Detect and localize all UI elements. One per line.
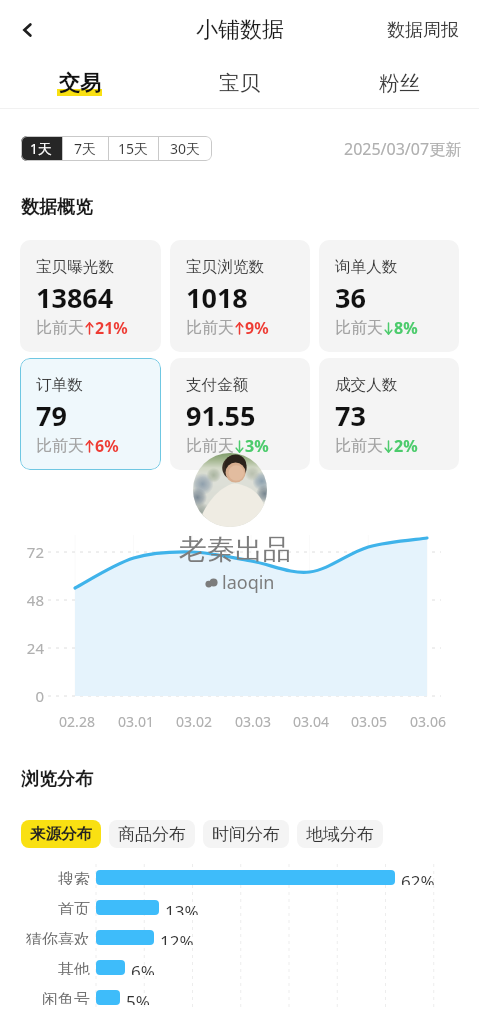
staticText: 36 bbox=[335, 279, 366, 316]
staticText: 03.01 bbox=[108, 712, 164, 731]
staticText: 时间分布 bbox=[212, 824, 280, 845]
staticText: 5% bbox=[126, 990, 150, 1005]
staticText: 48 bbox=[14, 590, 44, 610]
button[interactable]: 30天 bbox=[159, 136, 212, 161]
button[interactable]: 猜你喜欢 bbox=[0, 930, 479, 945]
button[interactable]: 15天 bbox=[109, 136, 158, 161]
staticText: 91.55 bbox=[186, 397, 256, 434]
button[interactable]: 订单数 bbox=[20, 358, 161, 470]
staticText: 粉丝 bbox=[379, 70, 420, 96]
staticText: 浏览分布 bbox=[21, 768, 93, 791]
staticText: laoqin bbox=[222, 570, 275, 595]
staticText: 比前天 bbox=[335, 436, 383, 456]
button[interactable]: 闲鱼号 bbox=[0, 990, 479, 1005]
staticText: 来源分布 bbox=[30, 824, 92, 844]
staticText: 13864 bbox=[36, 279, 114, 316]
button[interactable]: 粉丝 bbox=[319, 60, 479, 108]
staticText: 猜你喜欢 bbox=[0, 930, 90, 945]
staticText: 比前天 bbox=[186, 318, 234, 338]
staticText: 15天 bbox=[118, 139, 149, 158]
button[interactable]: 宝贝曝光数 bbox=[20, 240, 161, 352]
button[interactable]: 支付金额 bbox=[170, 358, 310, 470]
button[interactable]: 返回 bbox=[4, 7, 50, 53]
staticText: 2% bbox=[394, 435, 418, 457]
staticText: 老秦出品 bbox=[179, 532, 291, 567]
staticText: 比前天 bbox=[186, 436, 234, 456]
button[interactable]: 搜索 bbox=[0, 870, 479, 885]
staticText: 30天 bbox=[170, 139, 201, 158]
staticText: 1018 bbox=[186, 279, 248, 316]
staticText: 8% bbox=[394, 317, 418, 339]
staticText: 询单人数 bbox=[335, 257, 398, 277]
staticText: 首页 bbox=[0, 900, 90, 915]
staticText: 24 bbox=[14, 638, 44, 658]
staticText: 宝贝浏览数 bbox=[186, 257, 264, 277]
staticText: 3% bbox=[245, 435, 269, 457]
staticText: 1天 bbox=[30, 139, 53, 158]
button[interactable]: 1天 bbox=[21, 136, 62, 161]
staticText: 比前天 bbox=[36, 318, 84, 338]
staticText: 03.04 bbox=[283, 712, 339, 731]
staticText: 02.28 bbox=[49, 712, 105, 731]
staticText: 支付金额 bbox=[186, 375, 249, 395]
staticText: 79 bbox=[36, 397, 67, 434]
staticText: 成交人数 bbox=[335, 375, 398, 395]
button[interactable]: 询单人数 bbox=[319, 240, 459, 352]
staticText: 搜索 bbox=[0, 870, 90, 885]
staticText: 12% bbox=[160, 930, 194, 945]
staticText: 03.06 bbox=[400, 712, 456, 731]
staticText: 6% bbox=[95, 435, 119, 457]
staticText: 03.02 bbox=[166, 712, 222, 731]
staticText: 0 bbox=[14, 686, 44, 706]
staticText: 73 bbox=[335, 397, 366, 434]
button[interactable]: 地域分布 bbox=[297, 820, 383, 848]
staticText: 21% bbox=[95, 317, 128, 339]
staticText: 比前天 bbox=[335, 318, 383, 338]
staticText: 7天 bbox=[74, 139, 97, 158]
button[interactable]: 首页 bbox=[0, 900, 479, 915]
staticText: 03.03 bbox=[225, 712, 281, 731]
button[interactable]: 宝贝 bbox=[159, 60, 319, 108]
staticText: 交易 bbox=[59, 70, 101, 96]
button[interactable]: 商品分布 bbox=[109, 820, 195, 848]
staticText: 比前天 bbox=[36, 436, 84, 456]
staticText: 小铺数据 bbox=[196, 16, 284, 44]
button[interactable]: 成交人数 bbox=[319, 358, 459, 470]
staticText: 订单数 bbox=[36, 375, 83, 395]
button[interactable]: 数据周报 bbox=[367, 9, 479, 52]
button[interactable]: 宝贝浏览数 bbox=[170, 240, 310, 352]
button[interactable]: 其他 bbox=[0, 960, 479, 975]
staticText: 62% bbox=[401, 870, 435, 885]
staticText: 2025/03/07更新 bbox=[344, 138, 462, 160]
staticText: 9% bbox=[245, 317, 269, 339]
staticText: 宝贝曝光数 bbox=[36, 257, 114, 277]
staticText: 其他 bbox=[0, 960, 90, 975]
button[interactable]: 7天 bbox=[63, 136, 108, 161]
staticText: 72 bbox=[14, 542, 44, 562]
staticText: 闲鱼号 bbox=[0, 990, 90, 1005]
button[interactable]: 来源分布 bbox=[21, 820, 101, 848]
staticText: 数据概览 bbox=[21, 196, 93, 219]
staticText: 地域分布 bbox=[306, 824, 374, 845]
staticText: 商品分布 bbox=[118, 824, 186, 845]
staticText: 数据周报 bbox=[387, 19, 459, 42]
button[interactable]: 交易 bbox=[0, 60, 159, 108]
button[interactable]: 时间分布 bbox=[203, 820, 289, 848]
staticText: 6% bbox=[131, 960, 155, 975]
staticText: 宝贝 bbox=[219, 70, 260, 96]
staticText: 03.05 bbox=[341, 712, 397, 731]
staticText: 13% bbox=[165, 900, 199, 915]
